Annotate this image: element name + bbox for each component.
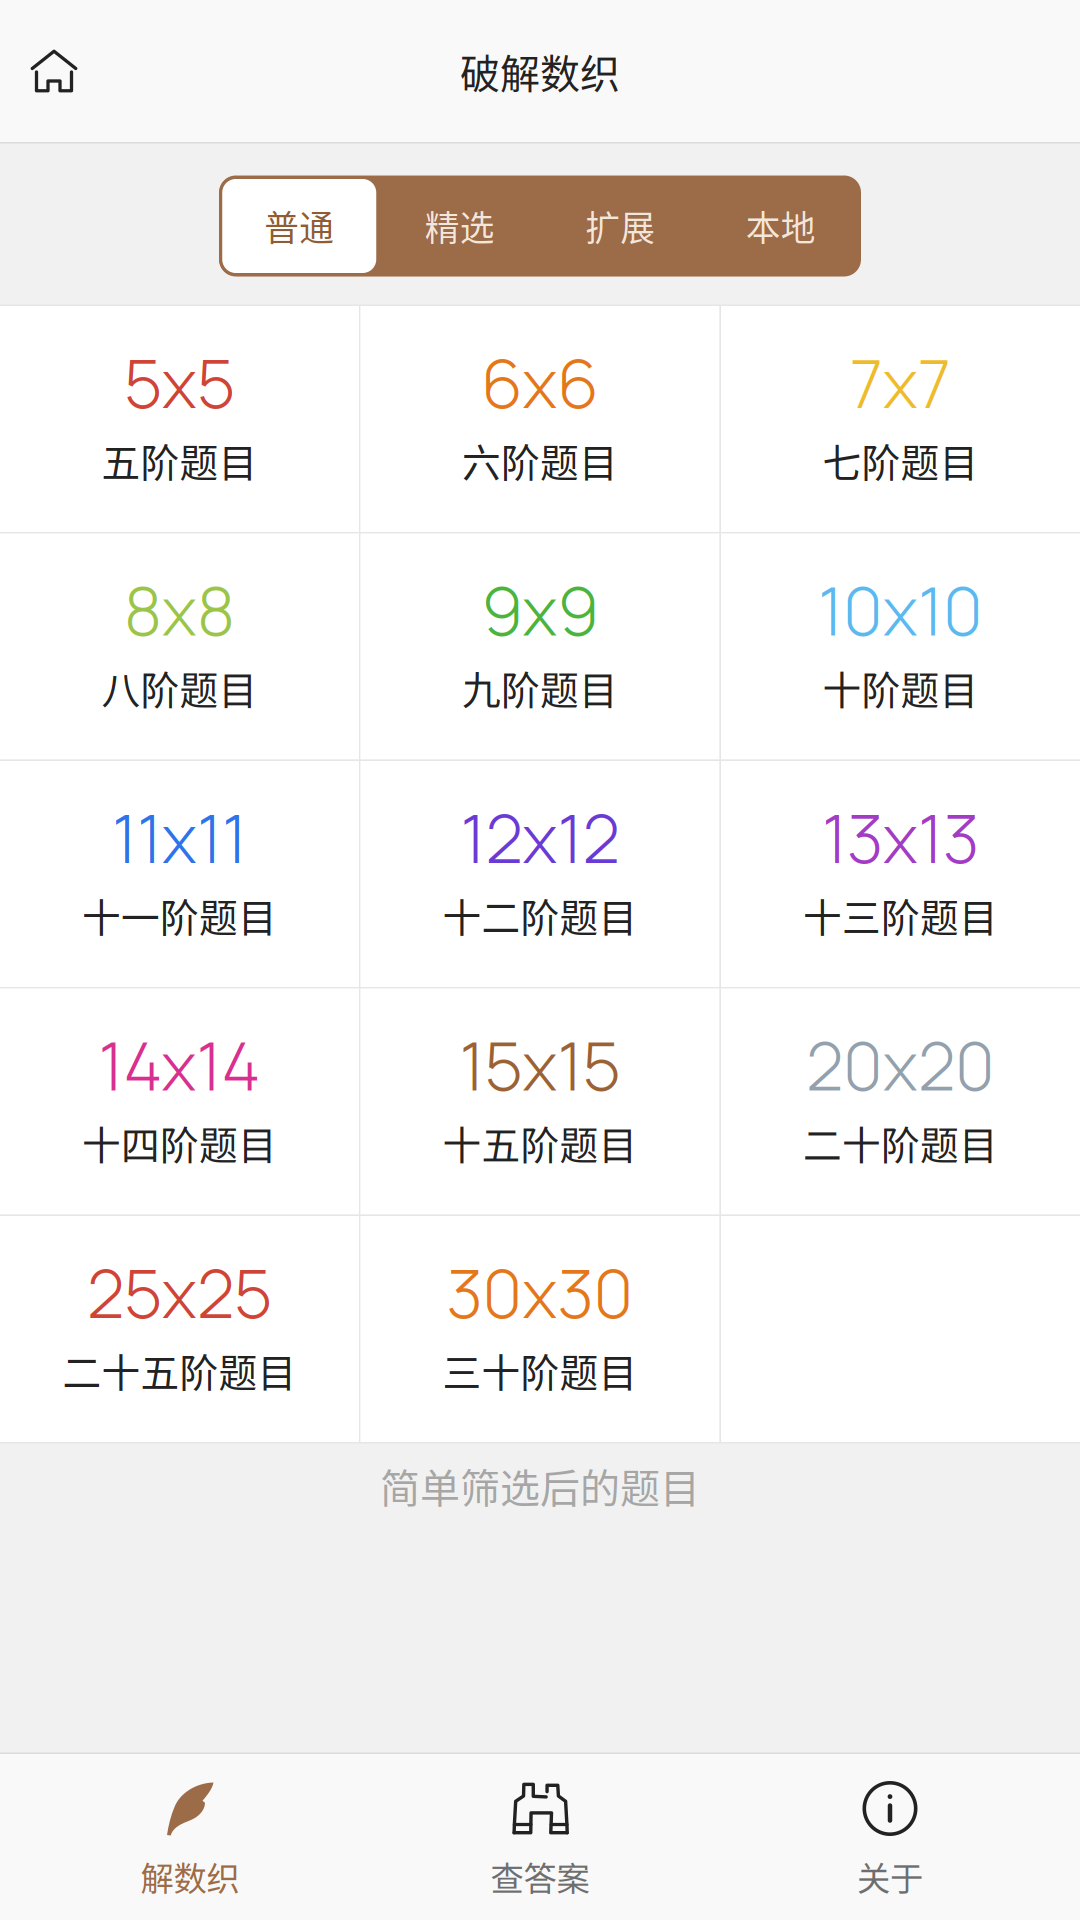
staticText: 查答案 (490, 1852, 589, 1900)
staticText: 八阶题目 (101, 660, 257, 716)
staticText: 十三阶题目 (803, 887, 998, 943)
staticText: 精选 (425, 201, 495, 251)
staticText: 五阶题目 (101, 432, 257, 488)
staticText: 解数织 (140, 1852, 239, 1900)
staticText: 十五阶题目 (442, 1115, 637, 1171)
staticText: 六阶题目 (462, 432, 618, 488)
button[interactable]: 7x7 (721, 306, 1080, 532)
button[interactable]: 12x12 (360, 761, 719, 987)
button[interactable]: 精选 (379, 175, 540, 276)
staticText: 10x10 (818, 564, 983, 656)
button[interactable]: 解数织 (15, 1754, 365, 1920)
staticText: 6x6 (481, 337, 598, 428)
staticText: 普通 (264, 201, 334, 251)
staticText: 8x8 (124, 564, 235, 656)
staticText: 七阶题目 (822, 432, 978, 488)
staticText: 十阶题目 (822, 660, 978, 716)
button[interactable]: 20x20 (721, 988, 1080, 1214)
staticText: 简单筛选后的题目 (380, 1456, 700, 1514)
button[interactable]: 关于 (715, 1754, 1065, 1920)
button[interactable]: 扩展 (540, 175, 700, 276)
button[interactable]: 13x13 (721, 761, 1080, 987)
staticText: 25x25 (87, 1247, 272, 1338)
staticText: 三十阶题目 (442, 1342, 637, 1398)
button[interactable]: 9x9 (360, 533, 719, 759)
staticText: 14x14 (98, 1019, 260, 1111)
button[interactable]: 14x14 (0, 988, 359, 1214)
button[interactable]: 11x11 (0, 761, 359, 987)
button[interactable]: 6x6 (360, 306, 719, 532)
button[interactable]: 10x10 (721, 533, 1080, 759)
staticText: 7x7 (850, 337, 951, 428)
staticText: 二十阶题目 (803, 1115, 998, 1171)
staticText: 11x11 (112, 792, 247, 883)
staticText: 破解数织 (460, 42, 620, 100)
button[interactable]: 普通 (219, 175, 379, 276)
staticText: 20x20 (806, 1019, 995, 1111)
staticText: 二十五阶题目 (62, 1342, 296, 1398)
staticText: 十四阶题目 (82, 1115, 277, 1171)
button[interactable]: 查答案 (365, 1754, 715, 1920)
staticText: 15x15 (459, 1019, 620, 1111)
button[interactable]: 5x5 (0, 306, 359, 532)
staticText: 十二阶题目 (442, 887, 637, 943)
staticText: 扩展 (585, 201, 655, 251)
button[interactable]: 15x15 (360, 988, 719, 1214)
button[interactable]: 8x8 (0, 533, 359, 759)
staticText: 13x13 (822, 792, 979, 883)
button[interactable]: 30x30 (360, 1216, 719, 1442)
staticText: 12x12 (460, 792, 619, 883)
button[interactable]: Home (0, 0, 108, 142)
staticText: 十一阶题目 (82, 887, 277, 943)
button[interactable]: 25x25 (0, 1216, 359, 1442)
staticText: 本地 (746, 201, 816, 251)
staticText: 关于 (857, 1852, 923, 1900)
staticText: 九阶题目 (462, 660, 618, 716)
button[interactable]: 本地 (700, 175, 861, 276)
staticText: 30x30 (446, 1247, 633, 1338)
staticText: 9x9 (481, 564, 598, 656)
staticText: 5x5 (124, 337, 235, 428)
